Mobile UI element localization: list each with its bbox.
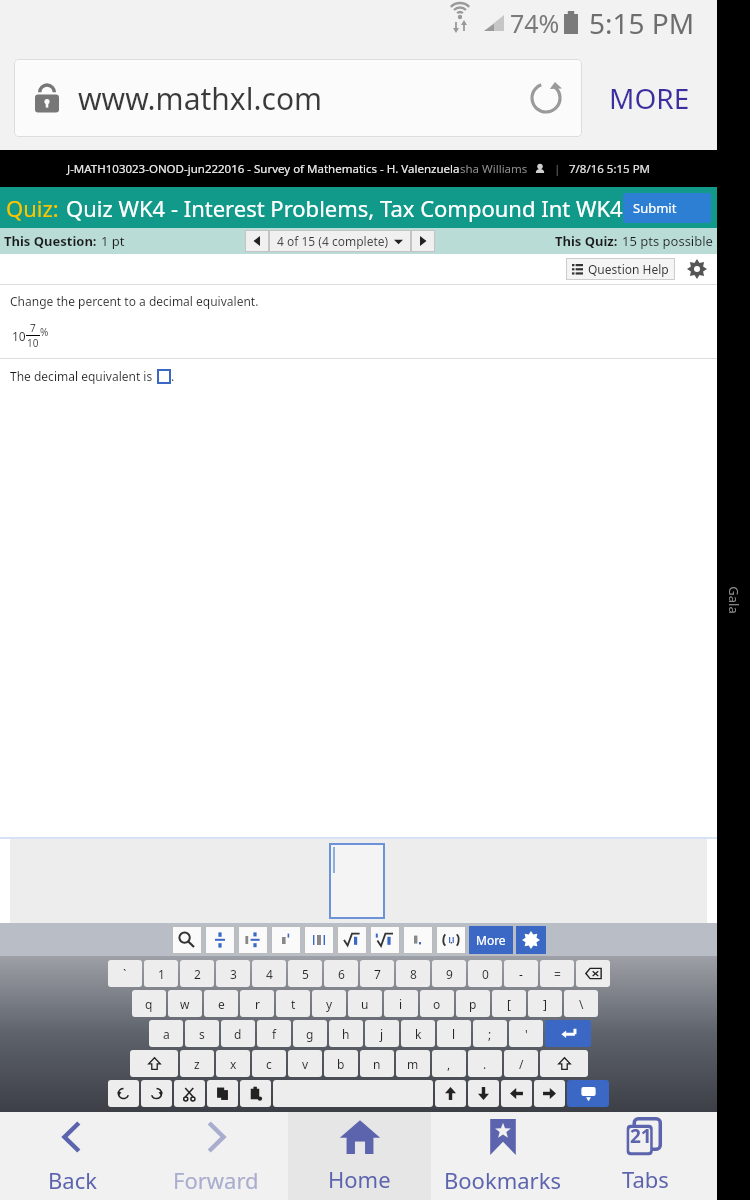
button[interactable]: nroot: [370, 926, 400, 954]
staticText: 5:15 PM: [589, 4, 695, 42]
button[interactable]: d: [221, 1020, 255, 1047]
button[interactable]: h: [329, 1020, 363, 1047]
button[interactable]: Previous question: [245, 230, 269, 252]
button[interactable]: mixed: [238, 926, 268, 954]
button[interactable]: ,: [432, 1050, 466, 1077]
button[interactable]: o: [420, 990, 454, 1017]
button[interactable]: shift: [130, 1050, 178, 1077]
button[interactable]: f: [257, 1020, 291, 1047]
button[interactable]: undo: [108, 1080, 139, 1107]
button[interactable]: z: [180, 1050, 214, 1077]
button[interactable]: u: [348, 990, 382, 1017]
button[interactable]: Answer box: [157, 369, 171, 384]
button[interactable]: Keyboard settings: [516, 926, 546, 954]
staticText: s: [199, 1026, 205, 1042]
button[interactable]: 3: [216, 960, 250, 987]
button[interactable]: =: [540, 960, 574, 987]
button[interactable]: j: [365, 1020, 399, 1047]
button[interactable]: [273, 1080, 433, 1107]
button[interactable]: 5: [288, 960, 322, 987]
button[interactable]: m: [396, 1050, 430, 1077]
button[interactable]: prime: [271, 926, 301, 954]
button[interactable]: p: [456, 990, 490, 1017]
button[interactable]: s: [185, 1020, 219, 1047]
staticText: 4: [266, 966, 273, 982]
button[interactable]: right: [534, 1080, 565, 1107]
button[interactable]: /: [504, 1050, 538, 1077]
button[interactable]: .: [468, 1050, 502, 1077]
button[interactable]: -: [504, 960, 538, 987]
button[interactable]: `: [108, 960, 142, 987]
button[interactable]: paste: [240, 1080, 271, 1107]
button[interactable]: q: [132, 990, 166, 1017]
button[interactable]: copy: [207, 1080, 238, 1107]
button[interactable]: magnifier: [172, 926, 202, 954]
button[interactable]: Expression input: [329, 843, 385, 919]
staticText: Quiz:: [6, 193, 59, 223]
staticText: Forward: [173, 1165, 259, 1195]
button[interactable]: hide: [567, 1080, 609, 1107]
button[interactable]: k: [401, 1020, 435, 1047]
button[interactable]: up: [435, 1080, 466, 1107]
button[interactable]: ]: [528, 990, 562, 1017]
button[interactable]: n: [360, 1050, 394, 1077]
button[interactable]: backspace: [576, 960, 610, 987]
button[interactable]: sqrt: [337, 926, 367, 954]
button[interactable]: y: [312, 990, 346, 1017]
button[interactable]: Home: [288, 1112, 431, 1200]
staticText: 2: [194, 966, 201, 982]
button[interactable]: Submit Quiz: [623, 193, 711, 223]
button[interactable]: left: [501, 1080, 532, 1107]
button[interactable]: Question Help: [566, 258, 675, 280]
button[interactable]: v: [288, 1050, 322, 1077]
button[interactable]: ;: [473, 1020, 507, 1047]
button[interactable]: a: [149, 1020, 183, 1047]
button[interactable]: www.mathxl.com: [14, 59, 582, 137]
button[interactable]: \: [564, 990, 598, 1017]
button[interactable]: x: [216, 1050, 250, 1077]
button[interactable]: 0: [468, 960, 502, 987]
staticText: J-MATH103023-ONOD-jun222016 - Survey of …: [67, 161, 460, 177]
button[interactable]: 9: [432, 960, 466, 987]
button[interactable]: t: [276, 990, 310, 1017]
button[interactable]: 8: [396, 960, 430, 987]
button[interactable]: 2: [180, 960, 214, 987]
button[interactable]: MORE: [582, 46, 717, 150]
button[interactable]: 21: [574, 1112, 717, 1200]
button[interactable]: More: [469, 926, 513, 954]
button[interactable]: ': [509, 1020, 543, 1047]
button[interactable]: 4 of 15 (4 complete): [269, 230, 411, 252]
button[interactable]: Bookmarks: [431, 1112, 574, 1200]
button[interactable]: e: [204, 990, 238, 1017]
button[interactable]: sub: [403, 926, 433, 954]
button[interactable]: Forward: [144, 1112, 288, 1200]
button[interactable]: down: [468, 1080, 499, 1107]
button[interactable]: w: [168, 990, 202, 1017]
staticText: 7: [374, 966, 381, 982]
button[interactable]: frac: [205, 926, 235, 954]
button[interactable]: abs: [304, 926, 334, 954]
button[interactable]: 1: [144, 960, 178, 987]
button[interactable]: shift: [540, 1050, 588, 1077]
staticText: [: [507, 996, 511, 1012]
button[interactable]: 6: [324, 960, 358, 987]
button[interactable]: redo: [141, 1080, 172, 1107]
button[interactable]: l: [437, 1020, 471, 1047]
button[interactable]: g: [293, 1020, 327, 1047]
button[interactable]: interval: [436, 926, 466, 954]
button[interactable]: r: [240, 990, 274, 1017]
button[interactable]: cut: [174, 1080, 205, 1107]
button[interactable]: 4: [252, 960, 286, 987]
button[interactable]: Back: [0, 1112, 144, 1200]
button[interactable]: i: [384, 990, 418, 1017]
button[interactable]: [: [492, 990, 526, 1017]
button[interactable]: b: [324, 1050, 358, 1077]
staticText: This Quiz:: [555, 232, 618, 250]
staticText: =: [554, 966, 561, 982]
button[interactable]: Next question: [411, 230, 435, 252]
button[interactable]: enter: [545, 1020, 591, 1047]
button[interactable]: Settings: [685, 257, 709, 281]
button[interactable]: c: [252, 1050, 286, 1077]
button[interactable]: 7: [360, 960, 394, 987]
button[interactable]: Reload: [520, 72, 572, 124]
